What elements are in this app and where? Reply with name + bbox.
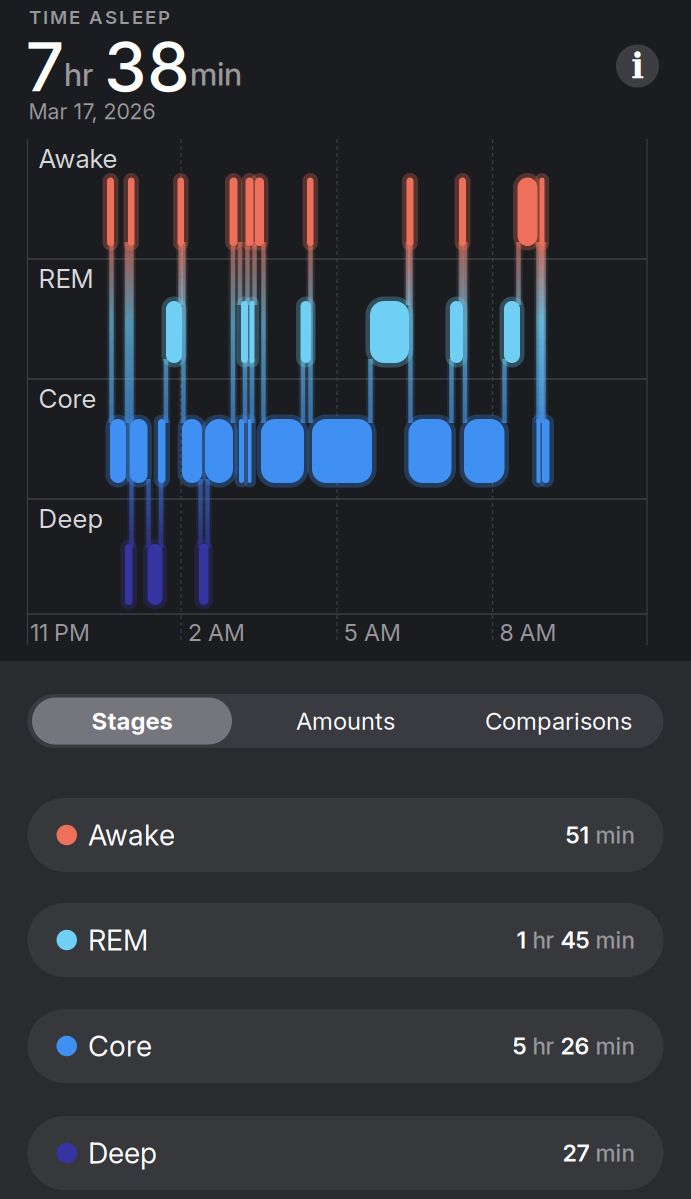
staticText: 5 AM xyxy=(344,618,401,647)
staticText: 11 PM xyxy=(30,618,90,647)
staticText: REM xyxy=(38,263,93,294)
staticText: min xyxy=(595,821,634,849)
button[interactable]: Awake xyxy=(27,798,663,872)
button[interactable]: Deep xyxy=(27,1116,663,1190)
staticText: hr xyxy=(532,926,554,954)
button[interactable]: Stages xyxy=(32,697,232,744)
button[interactable]: Amounts xyxy=(239,694,451,748)
staticText: min xyxy=(595,1139,634,1167)
staticText: min xyxy=(190,55,242,93)
staticText: Mar 17, 2026 xyxy=(28,99,155,124)
staticText: hr xyxy=(64,55,93,93)
staticText: 1 xyxy=(516,926,526,954)
staticText: Stages xyxy=(91,706,172,735)
staticText: hr xyxy=(532,1032,554,1060)
staticText: Core xyxy=(88,1029,152,1063)
staticText: Deep xyxy=(38,503,103,534)
staticText: min xyxy=(595,926,634,954)
staticText: 38 xyxy=(104,25,190,108)
staticText: 8 AM xyxy=(499,618,556,647)
button[interactable]: i xyxy=(616,44,659,87)
staticText: 45 xyxy=(560,926,589,954)
staticText: Deep xyxy=(88,1136,157,1170)
staticText: T I M E A S L E E P xyxy=(29,6,170,29)
staticText: Awake xyxy=(38,143,117,174)
staticText: Amounts xyxy=(296,706,395,735)
staticText: min xyxy=(595,1032,634,1060)
staticText: Awake xyxy=(88,818,175,852)
button[interactable]: Comparisons xyxy=(452,694,664,748)
button[interactable]: REM xyxy=(27,903,663,977)
button[interactable]: Core xyxy=(27,1009,663,1083)
staticText: REM xyxy=(88,923,148,957)
staticText: 5 xyxy=(512,1032,526,1060)
staticText: 27 xyxy=(562,1139,589,1167)
staticText: 2 AM xyxy=(188,618,245,647)
staticText: Core xyxy=(38,383,96,414)
staticText: i xyxy=(631,46,644,86)
staticText: Comparisons xyxy=(485,706,632,735)
staticText: 51 xyxy=(565,821,589,849)
staticText: 7 xyxy=(25,25,64,108)
staticText: 26 xyxy=(560,1032,589,1060)
